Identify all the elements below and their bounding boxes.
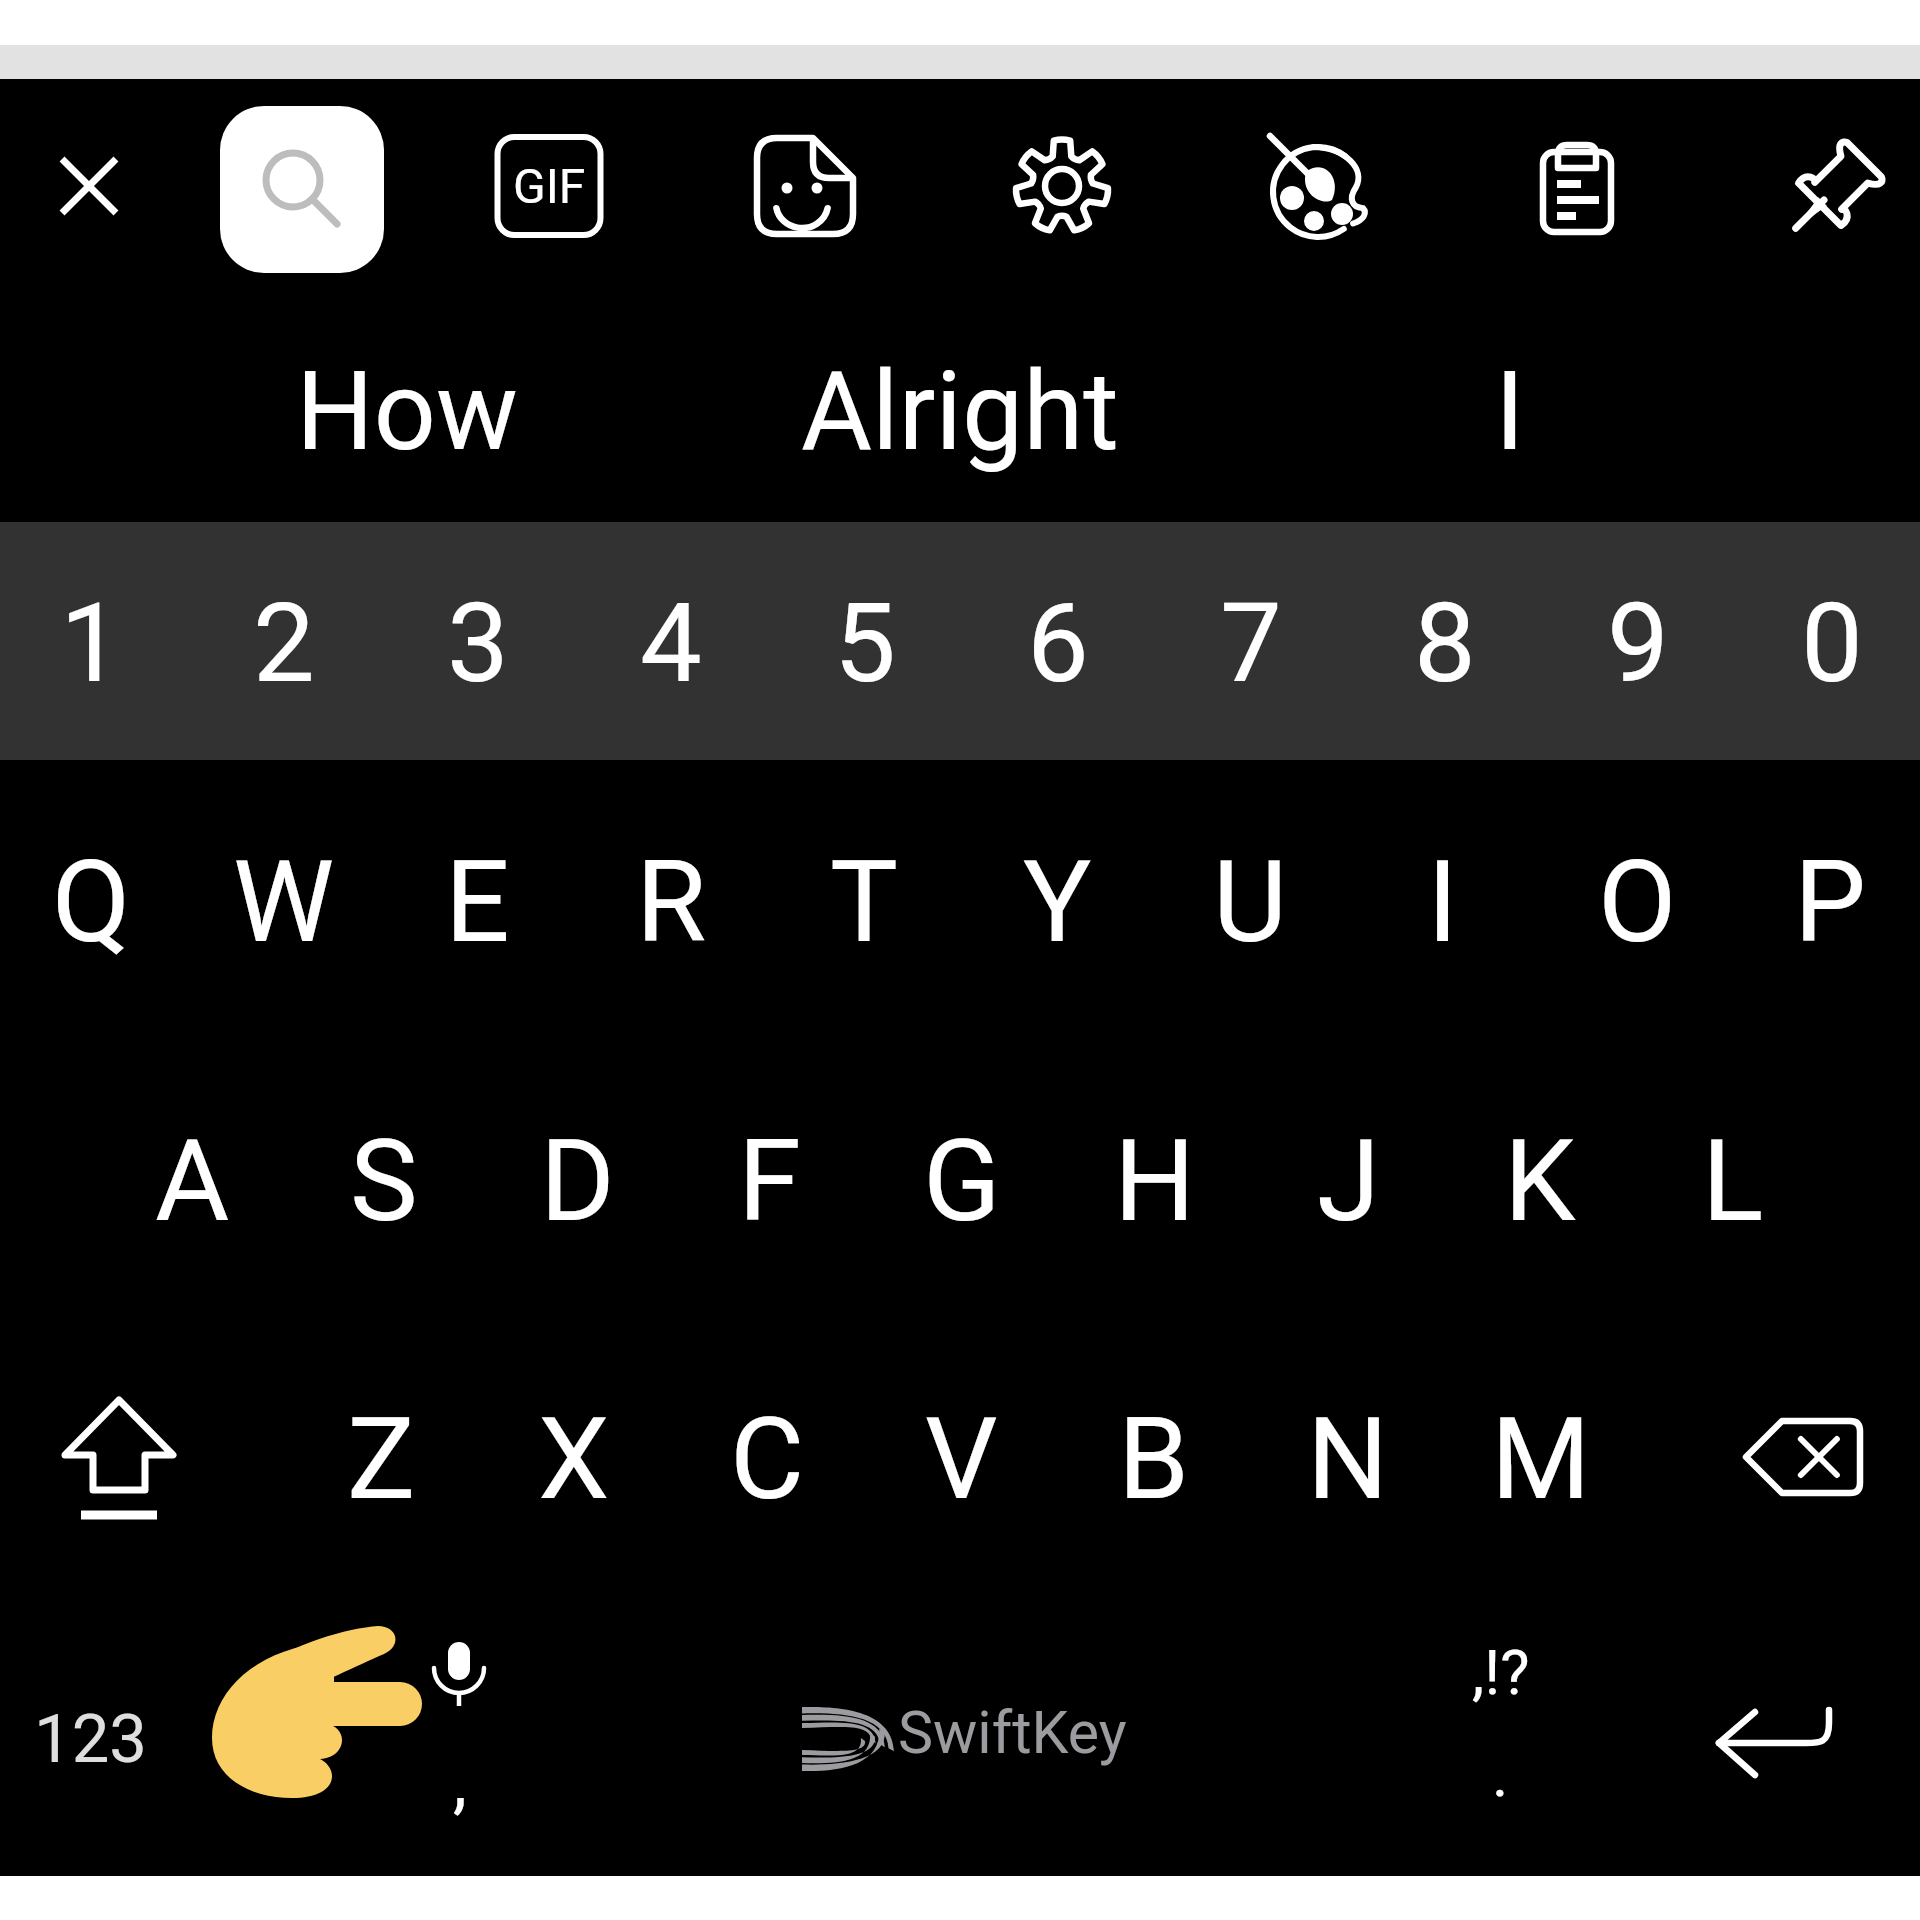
button[interactable]: T [768,772,960,1032]
staticText: P [1794,835,1866,969]
button[interactable]: O [1541,772,1733,1032]
staticText: 123 [34,1700,147,1779]
staticText: S [350,1114,418,1248]
staticText: 5 [834,579,896,708]
button[interactable]: ,!? [1404,1620,1596,1860]
button[interactable]: How [127,302,687,522]
staticText: L [1702,1114,1764,1248]
button[interactable]: Z [285,1329,477,1589]
staticText: R [636,835,707,969]
staticText: F [738,1114,802,1248]
button[interactable]: 7 [1155,524,1347,762]
button[interactable]: Settings [997,121,1127,251]
staticText: ,!? [1472,1636,1530,1709]
staticText: W [233,835,335,969]
button[interactable]: 5 [769,524,961,762]
staticText: Q [52,835,131,969]
button[interactable]: Enter [1680,1667,1872,1859]
staticText: 0 [1801,579,1863,708]
button[interactable]: M [1445,1329,1637,1589]
button[interactable]: 6 [962,524,1154,762]
button[interactable]: G [866,1051,1058,1311]
button[interactable]: A [96,1051,288,1311]
button[interactable]: 9 [1542,524,1734,762]
button[interactable]: Alright [680,302,1240,522]
button[interactable]: 3 [382,524,574,762]
staticText: D [540,1114,615,1248]
staticText: 4 [640,579,702,708]
button[interactable]: 123 [10,1659,170,1819]
button[interactable]: GIF [484,121,614,251]
staticText: A [155,1114,230,1248]
staticText: X [538,1392,610,1526]
staticText: G [923,1114,1001,1248]
button[interactable]: C [671,1329,863,1589]
button[interactable]: Clipboard [1512,121,1642,251]
staticText: N [1307,1392,1389,1526]
staticText: Y [1023,835,1092,969]
button[interactable]: H [1059,1051,1251,1311]
button[interactable]: SwiftKey [560,1638,1360,1838]
button[interactable]: Y [961,772,1153,1032]
button[interactable]: P [1734,772,1920,1032]
button[interactable]: N [1252,1329,1444,1589]
staticText: 7 [1220,579,1282,708]
button[interactable]: Voice input [362,1640,554,1840]
staticText: 3 [447,579,509,708]
staticText: 1 [60,579,122,708]
staticText: I [1427,835,1459,969]
staticText: E [445,835,510,969]
staticText: V [925,1392,998,1526]
button[interactable]: S [288,1051,480,1311]
button[interactable]: Backspace [1742,1417,1864,1497]
staticText: C [730,1392,805,1526]
button[interactable]: Search [220,106,384,273]
button[interactable]: J [1252,1051,1444,1311]
button[interactable]: 2 [188,524,380,762]
button[interactable]: U [1154,772,1346,1032]
button[interactable]: Shift [24,1380,214,1550]
staticText: How [296,348,518,476]
staticText: , [453,1741,467,1823]
button[interactable]: K [1444,1051,1636,1311]
button[interactable]: I [1230,302,1790,522]
staticText: GIF [513,158,586,214]
button[interactable]: Emoji [196,1626,422,1802]
button[interactable]: Themes [1255,121,1385,251]
button[interactable]: D [481,1051,673,1311]
button[interactable]: 1 [0,524,187,762]
button[interactable]: X [478,1329,670,1589]
staticText: T [830,835,899,969]
button[interactable]: 4 [575,524,767,762]
button[interactable]: L [1637,1051,1829,1311]
staticText: M [1491,1392,1591,1526]
button[interactable]: V [865,1329,1057,1589]
staticText: Alright [801,348,1119,476]
button[interactable]: I [1347,772,1539,1032]
button[interactable]: B [1058,1329,1250,1589]
staticText: Z [347,1392,416,1526]
button[interactable]: Stickers [740,121,870,251]
button[interactable]: F [674,1051,866,1311]
staticText: 8 [1414,579,1476,708]
staticText: B [1118,1392,1190,1526]
staticText: I [1495,348,1525,476]
staticText: SwiftKey [898,1698,1127,1767]
staticText: J [1317,1114,1380,1248]
button[interactable]: Q [0,772,187,1032]
button[interactable]: E [381,772,573,1032]
staticText: U [1213,835,1287,969]
staticText: 2 [253,579,315,708]
button[interactable]: Pin [1770,121,1900,251]
staticText: 6 [1027,579,1089,708]
staticText: 9 [1607,579,1669,708]
staticText: O [1598,835,1677,969]
staticText: K [1504,1114,1576,1248]
staticText: . [1492,1738,1509,1811]
button[interactable]: W [188,772,380,1032]
button[interactable]: R [575,772,767,1032]
button[interactable]: 0 [1736,524,1920,762]
button[interactable]: 8 [1349,524,1541,762]
staticText: H [1114,1114,1196,1248]
button[interactable]: Close [24,121,154,251]
